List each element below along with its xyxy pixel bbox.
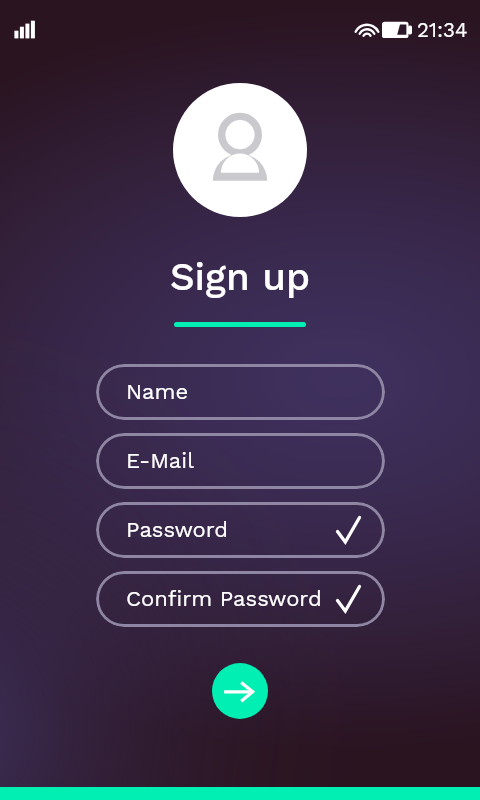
button[interactable]: Continue (212, 663, 268, 719)
button[interactable]: Password (96, 502, 385, 558)
button[interactable]: Name (96, 364, 385, 420)
button[interactable]: E-Mail (96, 433, 385, 489)
staticText: Sign up (170, 254, 311, 299)
staticText: Password (126, 517, 229, 543)
button[interactable]: Confirm Password (96, 571, 385, 627)
staticText: Confirm Password (126, 586, 322, 612)
staticText: 21:34 (417, 18, 468, 42)
staticText: Name (126, 379, 189, 405)
staticText: E-Mail (126, 448, 194, 474)
